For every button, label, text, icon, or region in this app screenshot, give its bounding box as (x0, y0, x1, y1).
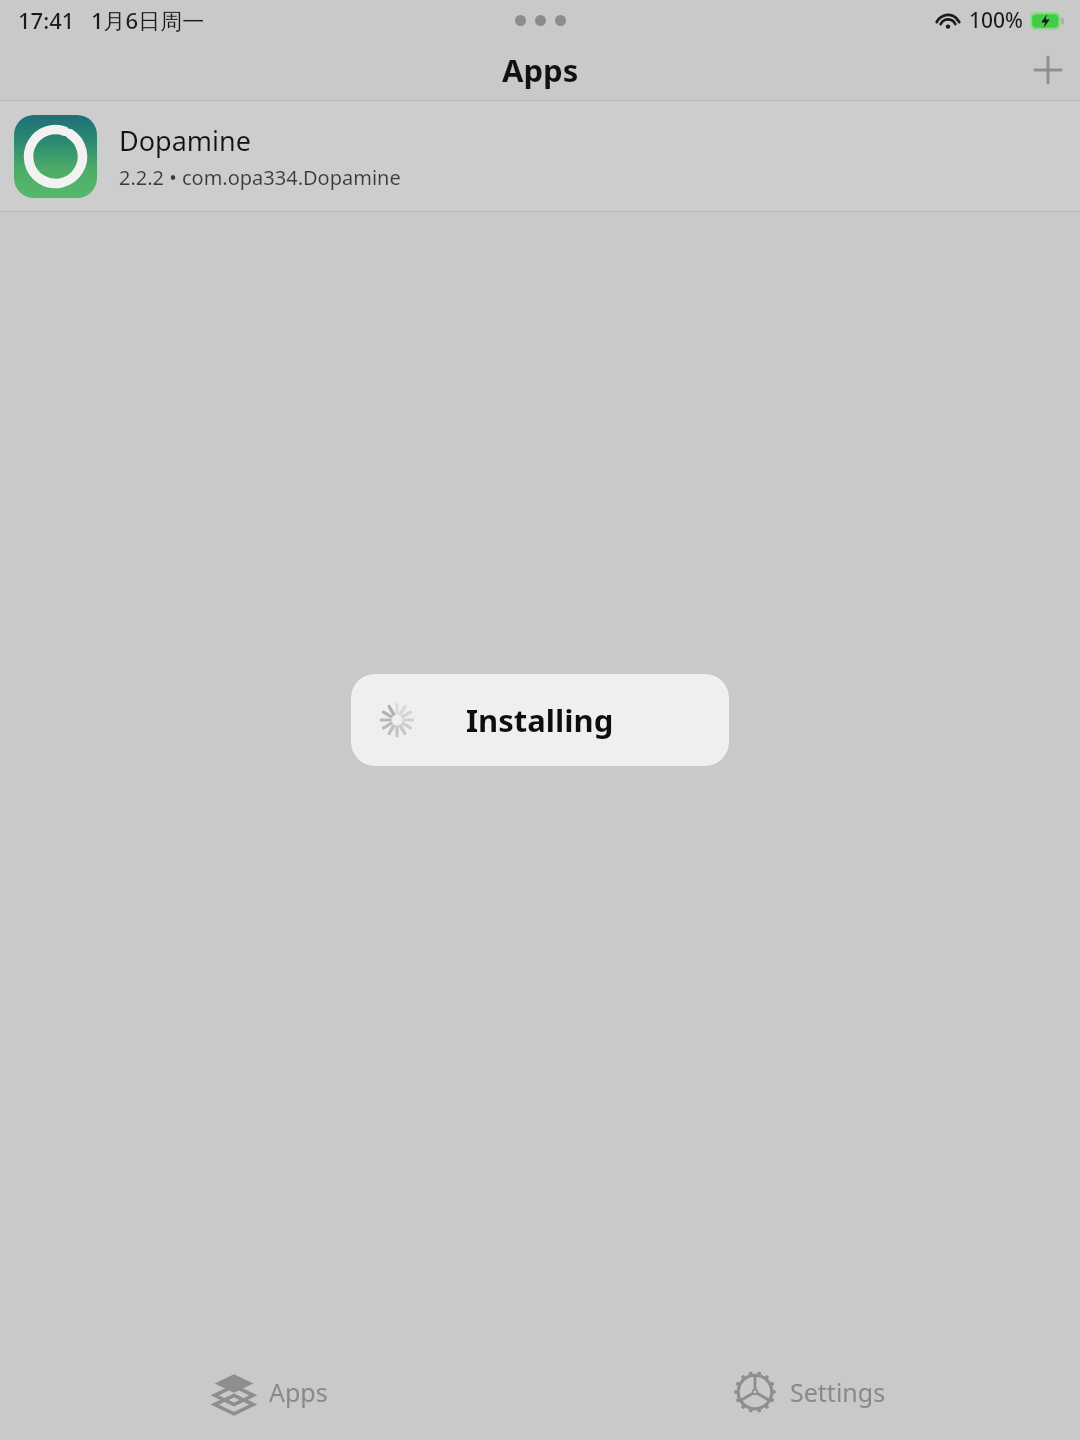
staticText: Dopamine (119, 122, 251, 159)
button[interactable]: Add app (1016, 40, 1080, 100)
staticText: 100% (969, 6, 1023, 35)
staticText: Installing (466, 699, 614, 741)
button[interactable]: Dopamine (0, 101, 1080, 211)
staticText: 1月6日周一 (91, 5, 205, 35)
staticText: 2.2.2 • com.opa334.Dopamine (119, 164, 401, 191)
staticText: 17:41 (18, 5, 75, 35)
staticText: Apps (502, 49, 579, 91)
staticText: Settings (790, 1375, 886, 1409)
button[interactable]: Apps (0, 1344, 540, 1440)
staticText: Apps (269, 1375, 328, 1409)
button[interactable]: Settings (540, 1344, 1080, 1440)
